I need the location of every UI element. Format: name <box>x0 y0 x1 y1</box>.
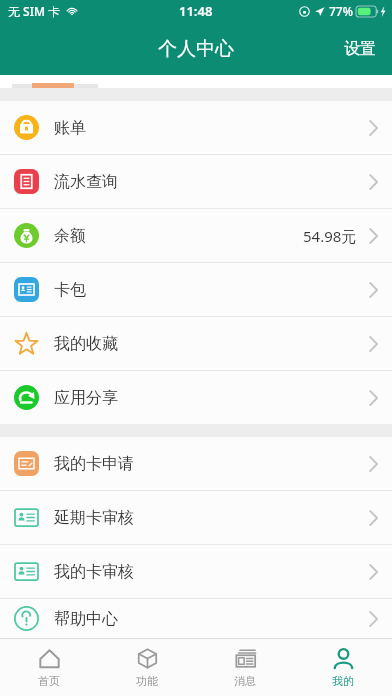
staticText: 54.98元 <box>303 226 357 246</box>
button[interactable]: 我的 <box>294 639 392 696</box>
staticText: 个人中心 <box>158 37 234 61</box>
staticText: 卡包 <box>54 280 86 300</box>
button[interactable]: 流水查询 <box>0 155 392 208</box>
button[interactable]: 消息 <box>196 639 294 696</box>
button[interactable]: 应用分享 <box>0 371 392 424</box>
staticText: 消息 <box>234 674 256 688</box>
button[interactable]: 首页 <box>0 639 98 696</box>
staticText: 11:48 <box>179 2 213 20</box>
button[interactable]: 功能 <box>98 639 196 696</box>
staticText: 我的收藏 <box>54 334 118 354</box>
staticText: 我的卡审核 <box>54 562 134 582</box>
staticText: 我的卡申请 <box>54 454 134 474</box>
staticText: 延期卡审核 <box>54 508 134 528</box>
staticText: 77% <box>329 3 353 19</box>
staticText: 首页 <box>38 674 60 688</box>
button[interactable]: 我的卡审核 <box>0 545 392 598</box>
button[interactable]: 卡包 <box>0 263 392 316</box>
staticText: 我的 <box>332 674 354 688</box>
button[interactable]: 我的收藏 <box>0 317 392 370</box>
staticText: 余额 <box>54 226 86 246</box>
button[interactable]: 余额 <box>0 209 392 262</box>
staticText: 帮助中心 <box>54 609 118 629</box>
staticText: 无 SIM 卡 <box>8 3 61 19</box>
button[interactable]: 账单 <box>0 101 392 154</box>
button[interactable]: 帮助中心 <box>0 599 392 638</box>
staticText: 功能 <box>136 674 158 688</box>
button[interactable]: 延期卡审核 <box>0 491 392 544</box>
staticText: 流水查询 <box>54 172 118 192</box>
staticText: 账单 <box>54 118 86 138</box>
staticText: 应用分享 <box>54 388 118 408</box>
button[interactable]: 设置 <box>328 27 392 71</box>
button[interactable]: 我的卡申请 <box>0 437 392 490</box>
staticText: 设置 <box>344 39 376 59</box>
